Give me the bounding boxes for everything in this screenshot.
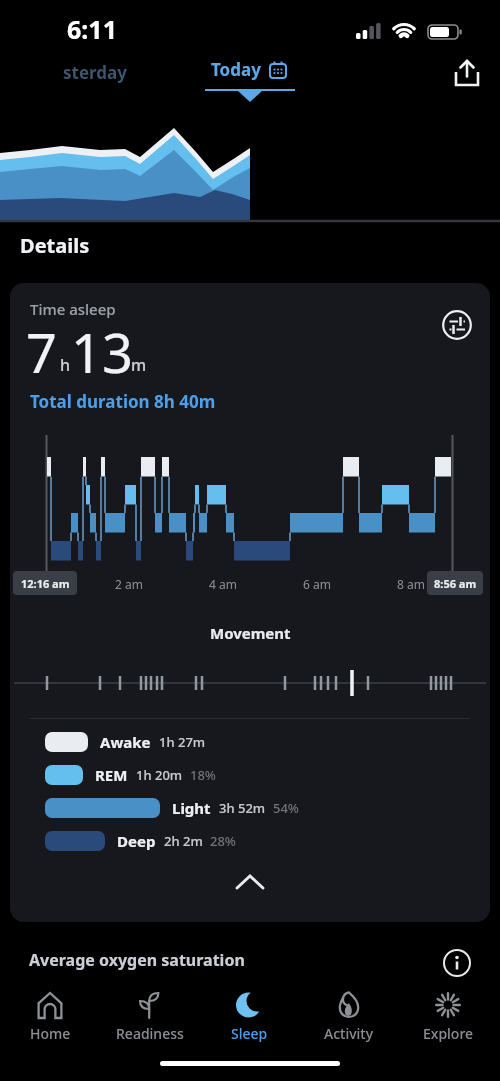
staticText: Details [20, 232, 90, 259]
staticText: Light [172, 798, 211, 818]
staticText: Today [211, 58, 261, 81]
button[interactable] [236, 874, 264, 892]
staticText: Sleep [231, 1024, 268, 1043]
button[interactable]: Readiness [106, 991, 194, 1057]
staticText: h [60, 354, 71, 376]
staticText: REM [95, 765, 128, 785]
button[interactable]: Home [14, 991, 86, 1057]
staticText: m [131, 354, 147, 376]
staticText: 13 [71, 315, 133, 389]
button[interactable]: Sleep [213, 991, 285, 1057]
staticText: 1h 20m [136, 766, 183, 784]
button[interactable] [452, 57, 482, 89]
staticText: 3h 52m [219, 799, 266, 817]
staticText: 6 am [303, 576, 331, 592]
button[interactable]: Activity [313, 991, 385, 1057]
staticText: 4 am [209, 576, 237, 592]
staticText: Movement [210, 623, 291, 643]
staticText: 12:16 am [21, 576, 70, 591]
staticText: Deep [117, 831, 156, 851]
button[interactable]: Today [211, 58, 287, 81]
staticText: 2h 2m [164, 832, 203, 850]
staticText: Readiness [116, 1024, 184, 1043]
staticText: 54% [273, 799, 299, 817]
staticText: Activity [324, 1024, 374, 1043]
staticText: 6:11 [67, 12, 117, 46]
staticText: 7 [26, 315, 57, 389]
staticText: Average oxygen saturation [29, 949, 245, 971]
button[interactable] [442, 310, 472, 340]
staticText: Total duration 8h 40m [30, 390, 216, 413]
staticText: Time asleep [30, 299, 116, 319]
staticText: 8 am [397, 576, 425, 592]
staticText: Awake [100, 732, 151, 752]
button[interactable] [443, 949, 471, 977]
staticText: 8:56 am [434, 576, 477, 591]
button[interactable]: sterday [63, 61, 127, 84]
staticText: 1h 27m [159, 733, 206, 751]
staticText: 2 am [115, 576, 143, 592]
staticText: 18% [190, 766, 216, 784]
staticText: 28% [210, 832, 236, 850]
staticText: Explore [423, 1024, 474, 1043]
button[interactable]: Explore [412, 991, 484, 1057]
staticText: Home [30, 1024, 71, 1043]
